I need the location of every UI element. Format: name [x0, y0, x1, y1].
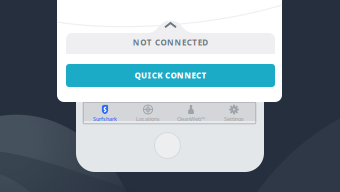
- staticText: Surfshark: [93, 115, 117, 122]
- button[interactable]: Surfshark: [83, 102, 126, 121]
- button[interactable]: QUICK CONNECT: [66, 64, 275, 87]
- staticText: Locations: [136, 115, 160, 122]
- staticText: CleanWeb™: [177, 115, 205, 122]
- button[interactable]: Locations: [126, 102, 169, 121]
- staticText: QUICK CONNECT: [135, 70, 206, 81]
- button[interactable]: CleanWeb™: [169, 102, 212, 121]
- button[interactable]: Settings: [212, 102, 255, 121]
- staticText: Settings: [224, 115, 244, 122]
- staticText: NOT CONNECTED: [133, 37, 208, 48]
